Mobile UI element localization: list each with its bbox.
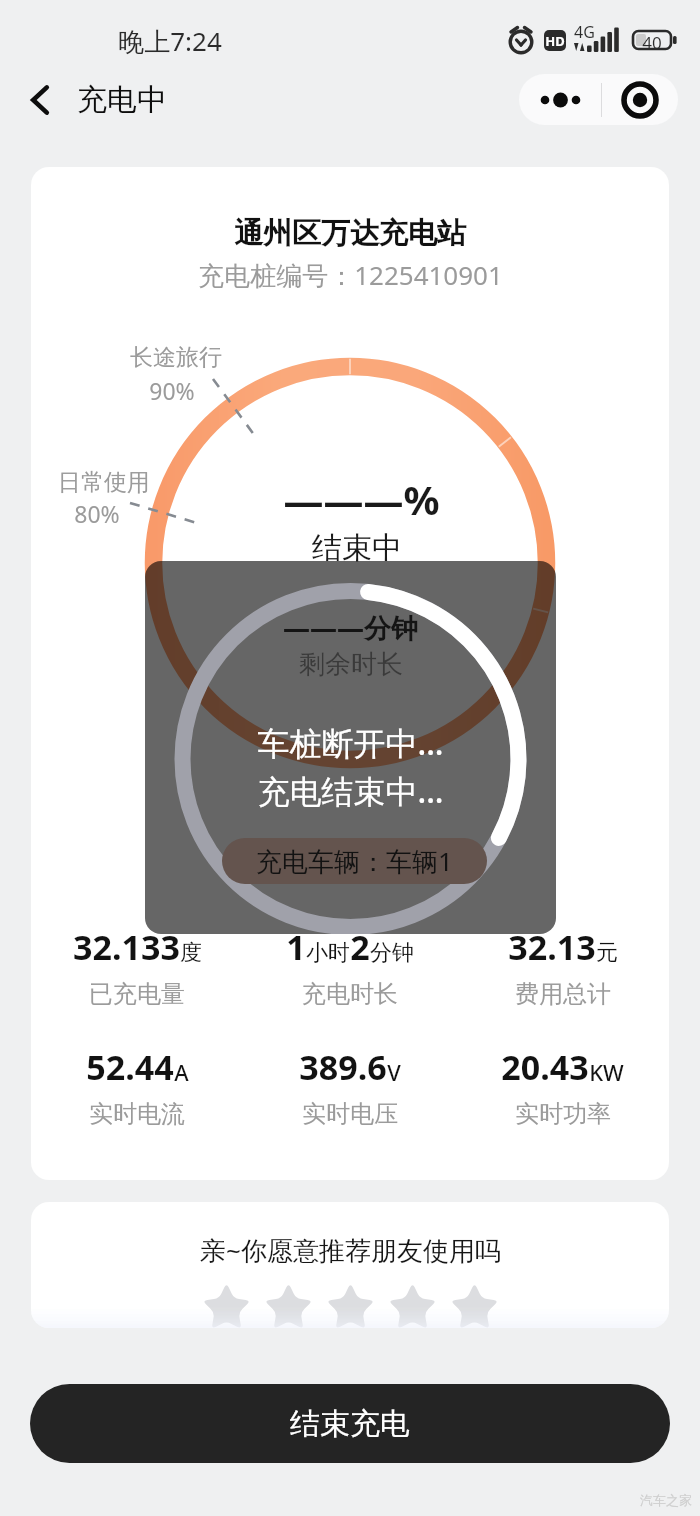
staticText: 20.43 bbox=[501, 1044, 589, 1090]
button[interactable]: Rate star bbox=[449, 1282, 493, 1326]
staticText: 充电桩编号：1225410901 bbox=[198, 257, 503, 293]
staticText: 充电结束中... bbox=[257, 769, 444, 813]
staticText: 通州区万达充电站 bbox=[234, 215, 466, 252]
staticText: 结束充电 bbox=[290, 1405, 410, 1443]
staticText: 度 bbox=[180, 939, 202, 967]
staticText: 长途旅行 bbox=[130, 343, 222, 372]
button[interactable]: 结束充电 bbox=[30, 1384, 670, 1463]
button[interactable]: Rate star bbox=[387, 1282, 431, 1326]
staticText: V bbox=[387, 1057, 401, 1087]
staticText: 充电中 bbox=[77, 81, 167, 119]
button[interactable]: More options bbox=[519, 74, 601, 125]
button[interactable]: Rate star bbox=[325, 1282, 369, 1326]
staticText: 结束中 bbox=[312, 529, 402, 567]
button[interactable]: Rate star bbox=[201, 1282, 245, 1326]
staticText: 4G bbox=[574, 21, 595, 43]
staticText: 40 bbox=[633, 31, 671, 54]
staticText: 车桩断开中... bbox=[257, 721, 444, 765]
staticText: 实时功率 bbox=[515, 1099, 611, 1129]
staticText: HD bbox=[544, 32, 566, 50]
button[interactable]: Rate star bbox=[263, 1282, 307, 1326]
staticText: 分钟 bbox=[370, 939, 414, 967]
staticText: 剩余时长 bbox=[299, 648, 403, 681]
staticText: A bbox=[174, 1057, 189, 1087]
staticText: 费用总计 bbox=[515, 979, 611, 1009]
staticText: 实时电压 bbox=[302, 1099, 398, 1129]
staticText: 元 bbox=[596, 939, 618, 967]
staticText: 实时电流 bbox=[89, 1099, 185, 1129]
staticText: ———分钟 bbox=[283, 609, 418, 646]
staticText: 晚上7:24 bbox=[118, 23, 222, 59]
staticText: 32.13 bbox=[508, 924, 596, 970]
staticText: ———% bbox=[283, 472, 440, 526]
staticText: 亲~你愿意推荐朋友使用吗 bbox=[200, 1232, 501, 1268]
button[interactable]: Close mini program bbox=[602, 74, 678, 125]
staticText: 日常使用 bbox=[58, 468, 150, 497]
staticText: 充电车辆：车辆1 bbox=[256, 843, 453, 879]
button[interactable]: Back bbox=[10, 70, 70, 130]
staticText: 389.6 bbox=[299, 1044, 387, 1090]
staticText: 52.44 bbox=[86, 1044, 174, 1090]
staticText: 汽车之家 bbox=[640, 1492, 692, 1508]
staticText: 32.133 bbox=[73, 924, 180, 970]
staticText: 充电时长 bbox=[302, 979, 398, 1009]
staticText: 2 bbox=[350, 924, 370, 970]
staticText: 1 bbox=[286, 924, 306, 970]
staticText: 80% bbox=[74, 498, 120, 529]
staticText: 90% bbox=[149, 375, 195, 406]
staticText: 已充电量 bbox=[89, 979, 185, 1009]
staticText: KW bbox=[589, 1057, 624, 1087]
staticText: 小时 bbox=[306, 939, 350, 967]
